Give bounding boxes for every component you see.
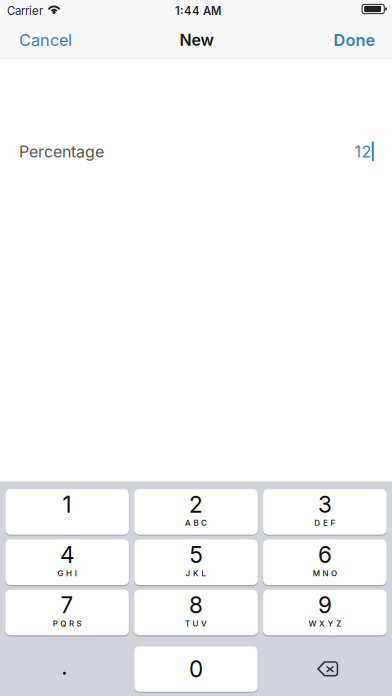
staticText: 12 <box>355 142 372 161</box>
button[interactable]: 2 <box>134 489 258 535</box>
button[interactable]: 1 <box>5 489 129 535</box>
staticText: GHI <box>57 568 77 578</box>
staticText: 7 <box>61 591 74 619</box>
staticText: 9 <box>318 591 332 619</box>
staticText: DEF <box>314 518 335 528</box>
staticText: 1 <box>63 491 72 518</box>
staticText: JKL <box>185 568 207 578</box>
staticText: WXYZ <box>308 619 341 628</box>
staticText: Cancel <box>19 30 72 50</box>
button[interactable]: Cancel <box>9 20 82 56</box>
staticText: Done <box>333 30 375 50</box>
staticText: New <box>179 30 213 50</box>
button[interactable]: 6 <box>263 539 387 585</box>
staticText: 3 <box>318 491 332 518</box>
staticText: . <box>61 653 67 680</box>
button[interactable]: 8 <box>134 590 258 635</box>
staticText: 1:44 AM <box>175 4 221 18</box>
button[interactable]: 7 <box>5 590 129 635</box>
staticText: 5 <box>189 541 202 568</box>
staticText: 8 <box>189 591 203 619</box>
button[interactable]: 5 <box>134 539 258 585</box>
staticText: PQRS <box>53 619 81 628</box>
staticText: 4 <box>60 541 74 568</box>
button[interactable]: 3 <box>263 489 387 535</box>
button[interactable]: . <box>5 646 129 692</box>
staticText: 6 <box>318 541 332 568</box>
button[interactable]: 4 <box>5 539 129 585</box>
staticText: Carrier <box>7 4 43 18</box>
button[interactable]: Delete <box>263 646 387 692</box>
staticText: ABC <box>185 518 207 528</box>
staticText: 2 <box>189 491 203 518</box>
staticText: MNO <box>313 568 337 578</box>
staticText: 0 <box>189 655 203 683</box>
button[interactable]: 9 <box>263 590 387 635</box>
button[interactable]: 0 <box>134 646 258 692</box>
staticText: TUV <box>185 619 207 628</box>
button[interactable]: Done <box>321 20 383 56</box>
staticText: Percentage <box>19 142 104 161</box>
